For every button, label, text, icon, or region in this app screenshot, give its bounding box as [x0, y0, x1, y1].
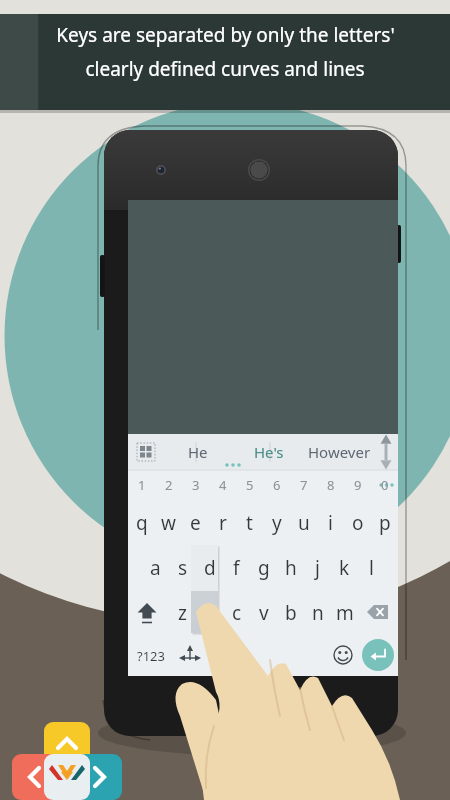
button[interactable]: o [344, 500, 371, 545]
button[interactable]: 0 [371, 470, 398, 500]
button[interactable]: k [331, 545, 358, 590]
staticText: o [352, 510, 364, 536]
button[interactable]: v [250, 590, 277, 635]
staticText: x [204, 600, 215, 626]
button[interactable]: 4 [209, 470, 236, 500]
staticText: 6 [273, 476, 281, 494]
staticText: c [232, 600, 242, 626]
button[interactable]: n [304, 590, 331, 635]
staticText: Keys are separated by only the letters' [56, 22, 395, 48]
staticText: 1 [138, 476, 146, 494]
button[interactable]: z [168, 590, 196, 635]
button[interactable]: 7 [290, 470, 317, 500]
staticText: l [369, 555, 374, 581]
staticText: He [188, 442, 208, 462]
button[interactable]: i [317, 500, 344, 545]
button[interactable]: 3 [182, 470, 209, 500]
staticText: s [178, 555, 188, 581]
button[interactable]: 5 [236, 470, 263, 500]
staticText: k [339, 555, 350, 581]
staticText: u [298, 510, 310, 536]
button[interactable]: f [223, 545, 250, 590]
staticText: 7 [300, 476, 308, 494]
button[interactable]: a [141, 545, 169, 590]
staticText: 4 [219, 476, 227, 494]
staticText: n [312, 600, 324, 626]
button[interactable]: u [290, 500, 317, 545]
button[interactable]: Expand suggestions [372, 434, 398, 470]
button[interactable]: p [371, 500, 398, 545]
staticText: f [233, 555, 240, 581]
staticText: q [136, 510, 148, 536]
staticText: However [308, 442, 371, 462]
staticText: b [285, 600, 297, 626]
button[interactable]: g [250, 545, 277, 590]
staticText: z [178, 600, 187, 626]
button[interactable]: s [169, 545, 196, 590]
staticText: 9 [354, 476, 362, 494]
button[interactable]: However [306, 434, 372, 470]
button[interactable]: e [182, 500, 209, 545]
staticText: ?123 [137, 647, 165, 665]
staticText: m [336, 600, 354, 626]
button[interactable]: w [155, 500, 182, 545]
staticText: g [258, 555, 270, 581]
button[interactable]: He [164, 434, 232, 470]
staticText: d [204, 555, 216, 581]
button[interactable]: 1 [128, 470, 155, 500]
button[interactable]: Backspace [358, 590, 398, 635]
button[interactable]: r [209, 500, 236, 545]
staticText: clearly defined curves and lines [85, 56, 365, 82]
button[interactable]: l [358, 545, 385, 590]
button[interactable]: Keyboard settings [128, 434, 164, 470]
staticText: 5 [246, 476, 254, 494]
button[interactable]: t [236, 500, 263, 545]
button[interactable]: m [331, 590, 358, 635]
button[interactable]: b [277, 590, 304, 635]
button[interactable]: j [304, 545, 331, 590]
staticText: p [379, 510, 391, 536]
staticText: e [190, 510, 201, 536]
staticText: v [259, 600, 269, 626]
button[interactable]: ?123 [128, 635, 174, 676]
button[interactable]: h [277, 545, 304, 590]
button[interactable]: Enter [362, 635, 398, 676]
staticText: i [328, 510, 333, 536]
button[interactable]: He's [232, 434, 306, 470]
button[interactable]: c [223, 590, 250, 635]
button[interactable]: App logo [12, 722, 132, 800]
button[interactable]: 9 [344, 470, 371, 500]
staticText: w [161, 510, 176, 536]
button[interactable]: Switch input method [174, 635, 208, 676]
button[interactable]: 6 [263, 470, 290, 500]
button[interactable]: y [263, 500, 290, 545]
staticText: j [315, 555, 320, 581]
staticText: a [150, 555, 161, 581]
button[interactable]: Emoji [328, 635, 362, 676]
staticText: t [246, 510, 253, 536]
staticText: 2 [165, 476, 173, 494]
button[interactable]: Space [208, 635, 328, 676]
button[interactable]: 8 [317, 470, 344, 500]
button[interactable]: d [196, 545, 223, 590]
staticText: 8 [327, 476, 335, 494]
button[interactable]: 2 [155, 470, 182, 500]
staticText: 0 [381, 476, 389, 494]
staticText: 3 [192, 476, 200, 494]
button[interactable]: q [128, 500, 155, 545]
button[interactable]: x [196, 590, 223, 635]
button[interactable]: Shift [128, 590, 168, 635]
staticText: He's [254, 442, 284, 462]
staticText: h [285, 555, 297, 581]
staticText: y [272, 510, 282, 536]
staticText: r [219, 510, 227, 536]
